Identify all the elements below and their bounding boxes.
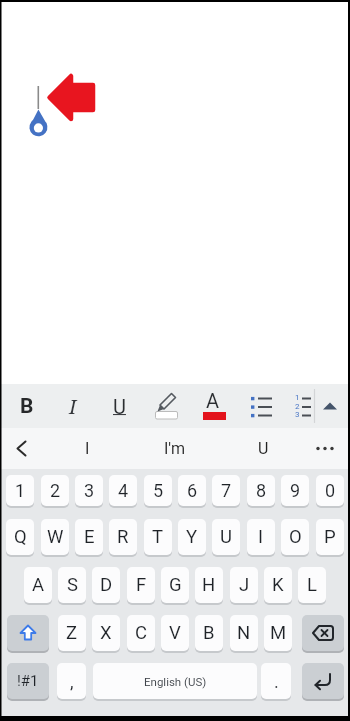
staticText: , bbox=[70, 671, 74, 692]
staticText: U bbox=[220, 526, 232, 548]
button[interactable]: I bbox=[62, 432, 112, 465]
staticText: 2 bbox=[50, 480, 61, 501]
staticText: 8 bbox=[256, 480, 267, 501]
button[interactable]: 6 bbox=[178, 475, 206, 506]
staticText: N bbox=[237, 622, 251, 644]
button[interactable]: H bbox=[195, 567, 223, 603]
button[interactable]: 8 bbox=[247, 475, 275, 506]
button[interactable]: B bbox=[13, 390, 41, 422]
button[interactable]: X bbox=[92, 615, 120, 651]
staticText: 3 bbox=[84, 480, 95, 501]
staticText: W bbox=[47, 526, 64, 548]
button[interactable]: S bbox=[58, 567, 86, 603]
staticText: G bbox=[169, 574, 182, 596]
staticText: I'm bbox=[164, 439, 186, 458]
button[interactable]: Y bbox=[178, 519, 206, 555]
button[interactable] bbox=[290, 388, 322, 424]
button[interactable]: 1 bbox=[6, 475, 34, 506]
button[interactable]: 0 bbox=[316, 475, 344, 506]
staticText: Z bbox=[66, 622, 78, 644]
button[interactable]: , bbox=[57, 663, 86, 699]
button[interactable] bbox=[150, 388, 182, 424]
button[interactable]: E bbox=[75, 519, 103, 555]
staticText: P bbox=[324, 526, 336, 548]
staticText: M bbox=[270, 622, 287, 644]
button[interactable]: D bbox=[92, 567, 120, 603]
button[interactable]: N bbox=[230, 615, 258, 651]
button[interactable]: 9 bbox=[281, 475, 309, 506]
button[interactable]: U bbox=[238, 432, 288, 465]
staticText: A bbox=[32, 574, 45, 596]
staticText: B bbox=[20, 394, 34, 419]
staticText: H bbox=[202, 574, 216, 596]
button[interactable]: 2 bbox=[41, 475, 69, 506]
staticText: B bbox=[203, 622, 215, 644]
button[interactable]: Z bbox=[58, 615, 86, 651]
staticText: Q bbox=[14, 526, 27, 548]
staticText: O bbox=[289, 526, 302, 548]
staticText: 1 bbox=[15, 480, 26, 501]
button[interactable]: P bbox=[316, 519, 344, 555]
staticText: 5 bbox=[153, 480, 164, 501]
staticText: 0 bbox=[325, 480, 336, 501]
button[interactable]: M bbox=[264, 615, 292, 651]
staticText: K bbox=[272, 574, 284, 596]
staticText: D bbox=[100, 574, 113, 596]
button[interactable]: R bbox=[109, 519, 137, 555]
staticText: U bbox=[113, 395, 126, 418]
button[interactable] bbox=[245, 388, 277, 424]
button[interactable]: W bbox=[41, 519, 69, 555]
staticText: J bbox=[239, 574, 250, 596]
button[interactable]: 3 bbox=[75, 475, 103, 506]
button[interactable]: G bbox=[161, 567, 189, 603]
staticText: 3 bbox=[295, 410, 300, 419]
button[interactable]: I'm bbox=[150, 432, 200, 465]
staticText: U bbox=[258, 439, 269, 458]
button[interactable]: F bbox=[127, 567, 155, 603]
staticText: A bbox=[206, 389, 220, 412]
button[interactable]: . bbox=[261, 663, 291, 699]
staticText: 1 bbox=[295, 393, 300, 402]
staticText: V bbox=[169, 622, 181, 644]
staticText: !#1 bbox=[17, 672, 39, 690]
staticText: I bbox=[69, 393, 77, 420]
staticText: English (US) bbox=[144, 675, 207, 688]
staticText: 2 bbox=[295, 402, 300, 411]
staticText: 6 bbox=[187, 480, 198, 501]
staticText: . bbox=[274, 671, 279, 692]
staticText: X bbox=[100, 622, 112, 644]
button[interactable] bbox=[302, 615, 344, 651]
button[interactable]: L bbox=[298, 567, 326, 603]
button[interactable]: U bbox=[212, 519, 240, 555]
button[interactable]: 7 bbox=[212, 475, 240, 506]
button[interactable]: I bbox=[59, 390, 87, 422]
button[interactable] bbox=[4, 432, 40, 465]
staticText: 9 bbox=[290, 480, 301, 501]
button[interactable] bbox=[302, 663, 344, 699]
button[interactable]: A bbox=[199, 388, 227, 412]
staticText: 7 bbox=[221, 480, 232, 501]
staticText: S bbox=[67, 574, 78, 596]
staticText: E bbox=[84, 526, 95, 548]
button[interactable]: A bbox=[24, 567, 52, 603]
staticText: R bbox=[117, 526, 129, 548]
button[interactable]: O bbox=[281, 519, 309, 555]
button[interactable]: V bbox=[161, 615, 189, 651]
staticText: 4 bbox=[118, 480, 129, 501]
button[interactable]: B bbox=[195, 615, 223, 651]
button[interactable]: U bbox=[105, 390, 133, 422]
button[interactable]: J bbox=[230, 567, 258, 603]
button[interactable]: English (US) bbox=[93, 663, 257, 699]
button[interactable]: C bbox=[127, 615, 155, 651]
button[interactable]: T bbox=[144, 519, 172, 555]
staticText: T bbox=[152, 526, 164, 548]
button[interactable] bbox=[7, 615, 49, 651]
button[interactable]: !#1 bbox=[7, 663, 49, 699]
staticText: L bbox=[307, 574, 317, 596]
button[interactable]: 5 bbox=[144, 475, 172, 506]
staticText: C bbox=[135, 622, 148, 644]
button[interactable]: 4 bbox=[109, 475, 137, 506]
button[interactable]: Q bbox=[6, 519, 34, 555]
button[interactable]: I bbox=[247, 519, 275, 555]
button[interactable]: K bbox=[264, 567, 292, 603]
